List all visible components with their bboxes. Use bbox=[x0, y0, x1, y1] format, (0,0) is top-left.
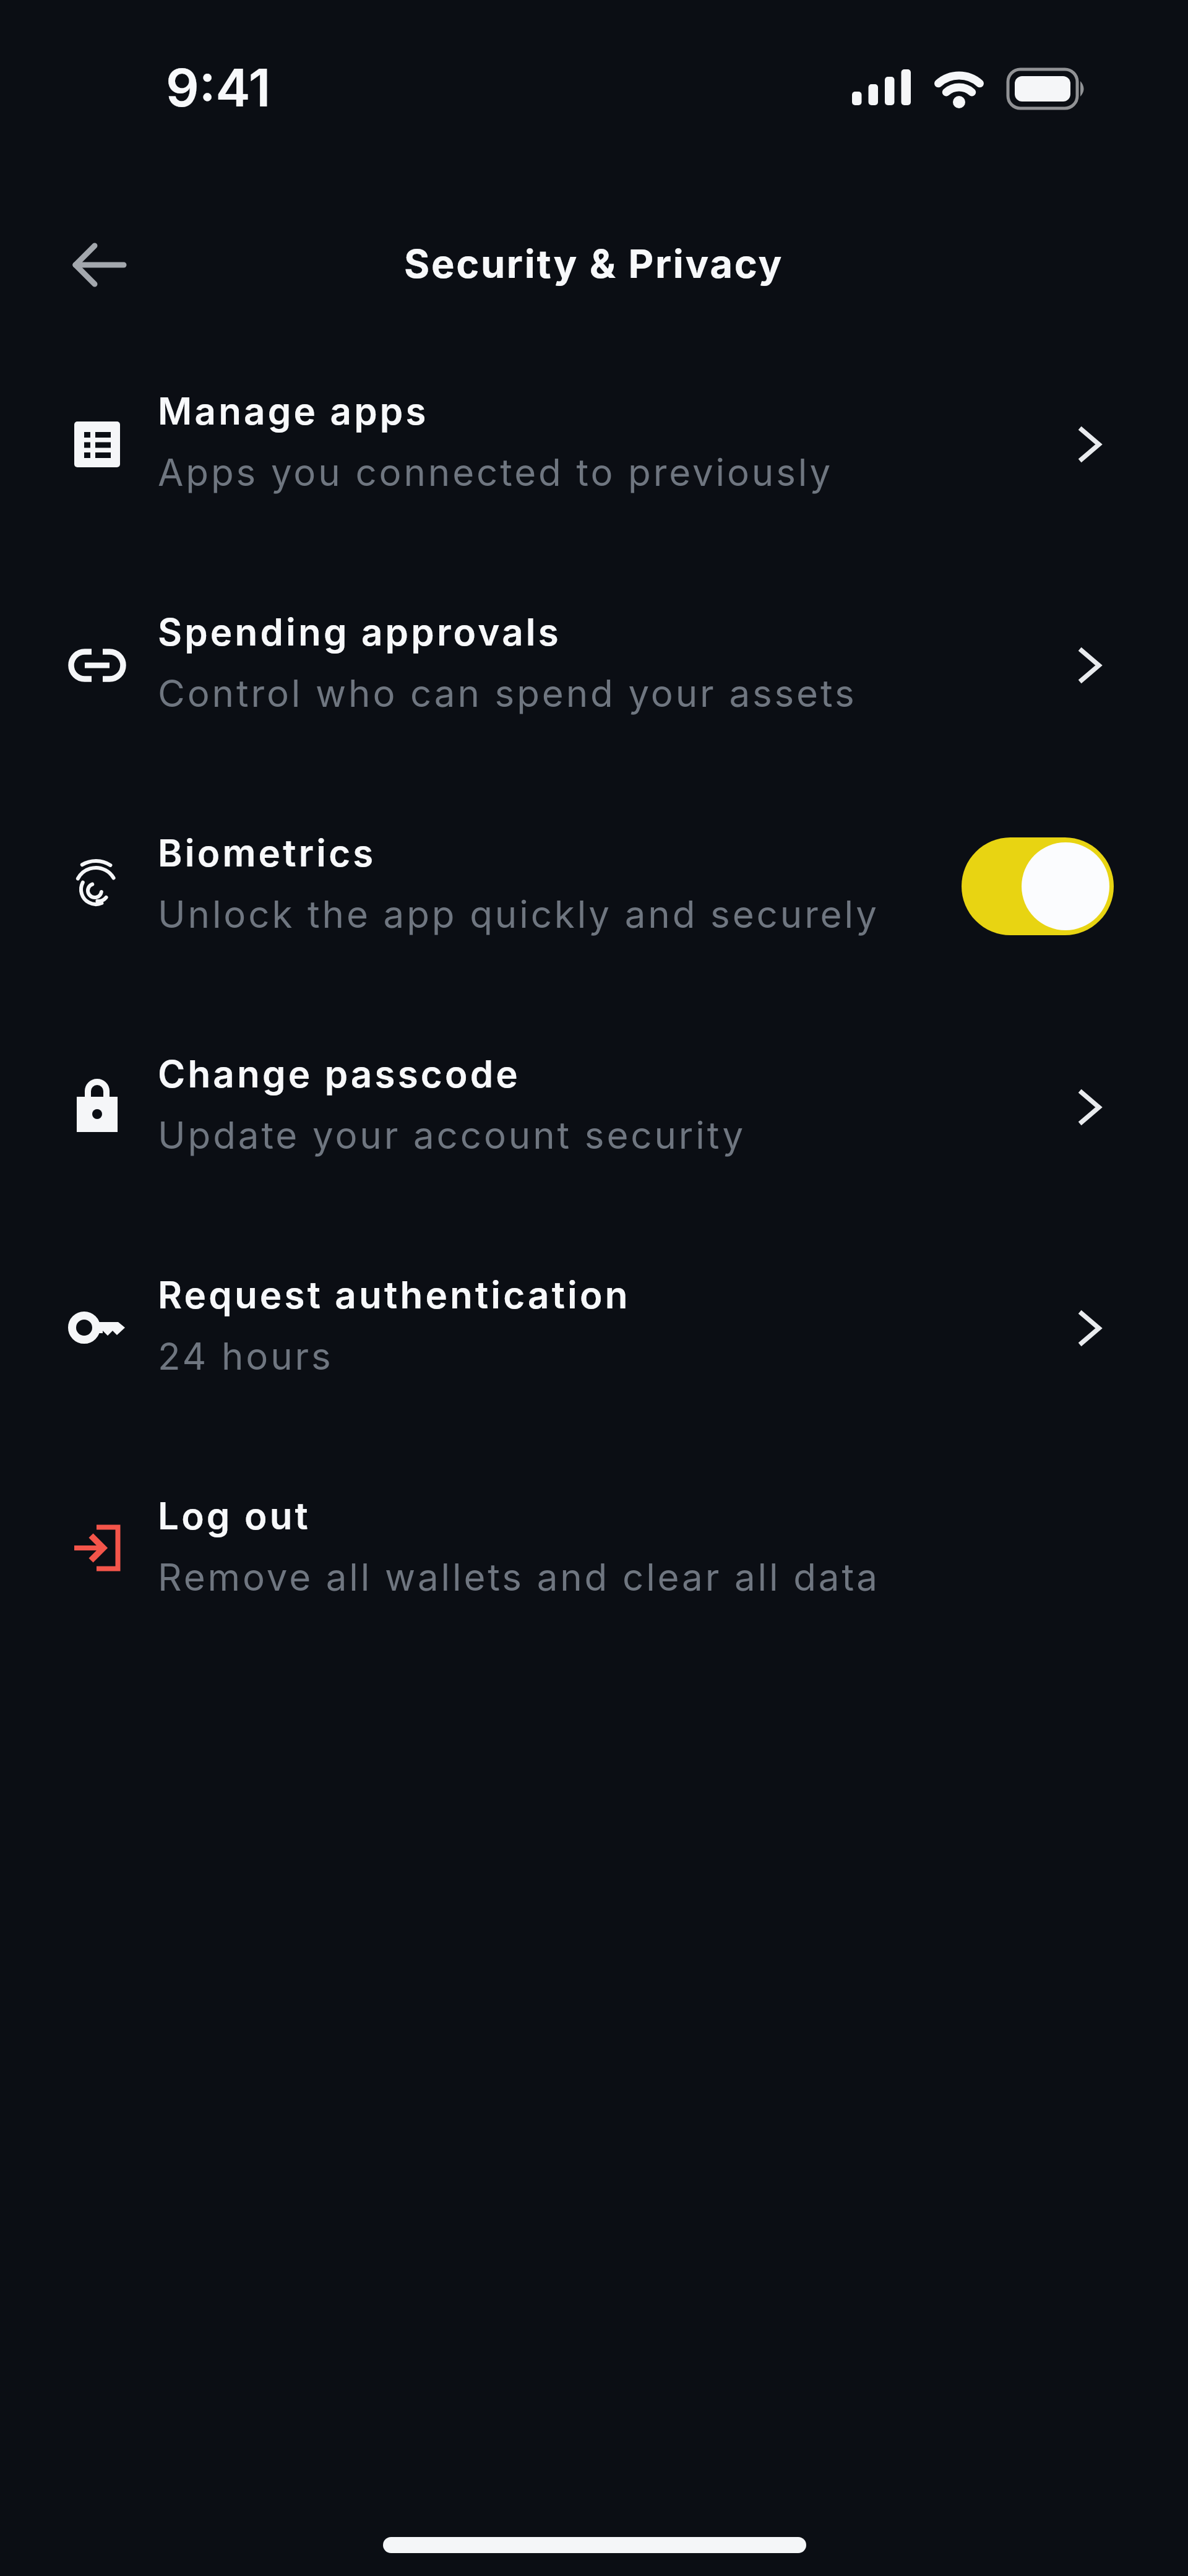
staticText: Log out bbox=[158, 1493, 311, 1539]
button[interactable]: Change passcode bbox=[0, 997, 1188, 1218]
staticText: Biometrics bbox=[158, 831, 376, 876]
staticText: Apps you connected to previously bbox=[158, 450, 833, 495]
staticText: 9:41 bbox=[166, 56, 271, 119]
button[interactable]: Log out bbox=[0, 1439, 1188, 1660]
staticText: Manage apps bbox=[158, 389, 429, 434]
button[interactable]: Biometrics bbox=[0, 776, 1188, 997]
staticText: Update your account security bbox=[158, 1113, 746, 1158]
staticText: Remove all wallets and clear all data bbox=[158, 1555, 880, 1600]
staticText: Spending approvals bbox=[158, 610, 561, 655]
staticText: Security & Privacy bbox=[404, 240, 784, 287]
button[interactable] bbox=[962, 837, 1114, 935]
button[interactable]: Spending approvals bbox=[0, 555, 1188, 776]
button[interactable]: Request authentication bbox=[0, 1218, 1188, 1439]
staticText: 24 hours bbox=[158, 1334, 334, 1379]
staticText: Change passcode bbox=[158, 1052, 521, 1097]
button[interactable] bbox=[59, 235, 140, 294]
staticText: Control who can spend your assets bbox=[158, 671, 857, 716]
staticText: Unlock the app quickly and securely bbox=[158, 892, 879, 937]
staticText: Request authentication bbox=[158, 1273, 631, 1318]
button[interactable]: Manage apps bbox=[0, 334, 1188, 555]
